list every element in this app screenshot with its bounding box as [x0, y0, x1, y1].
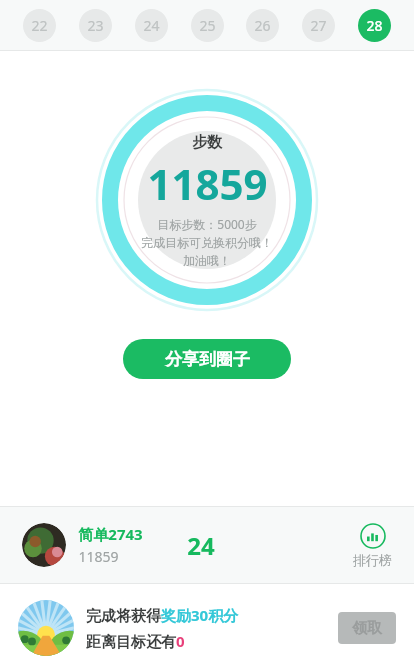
button[interactable]: 排行榜 — [353, 523, 392, 568]
staticText: 完成将获得奖励30积分 — [86, 605, 239, 625]
button[interactable]: 28 — [358, 9, 391, 42]
button[interactable]: 简单2743 — [0, 507, 414, 583]
button[interactable]: 23 — [79, 9, 112, 42]
staticText: 完成目标可兑换积分哦！ — [141, 235, 273, 250]
staticText: 11859 — [147, 155, 268, 212]
button[interactable]: 分享到圈子 — [123, 339, 291, 379]
staticText: 11859 — [78, 547, 119, 566]
staticText: 24 — [143, 16, 160, 35]
staticText: 23 — [87, 16, 104, 35]
staticText: 目标步数：5000步 — [157, 216, 257, 232]
staticText: 步数 — [192, 133, 222, 152]
staticText: 25 — [199, 16, 216, 35]
staticText: 领取 — [352, 619, 382, 638]
button[interactable]: 24 — [135, 9, 168, 42]
button[interactable]: 26 — [246, 9, 279, 42]
staticText: 分享到圈子 — [165, 349, 250, 370]
staticText: 排行榜 — [353, 552, 392, 568]
staticText: 24 — [187, 529, 215, 562]
staticText: 27 — [310, 16, 327, 35]
button[interactable]: 22 — [23, 9, 56, 42]
staticText: 距离目标还有0 — [86, 631, 185, 651]
staticText: 简单2743 — [78, 524, 143, 544]
staticText: 22 — [31, 16, 48, 35]
staticText: 26 — [254, 16, 271, 35]
button[interactable]: 27 — [302, 9, 335, 42]
button[interactable]: 25 — [191, 9, 224, 42]
button[interactable]: 领取 — [338, 612, 396, 644]
staticText: 28 — [366, 16, 383, 35]
staticText: 加油哦！ — [183, 253, 231, 268]
